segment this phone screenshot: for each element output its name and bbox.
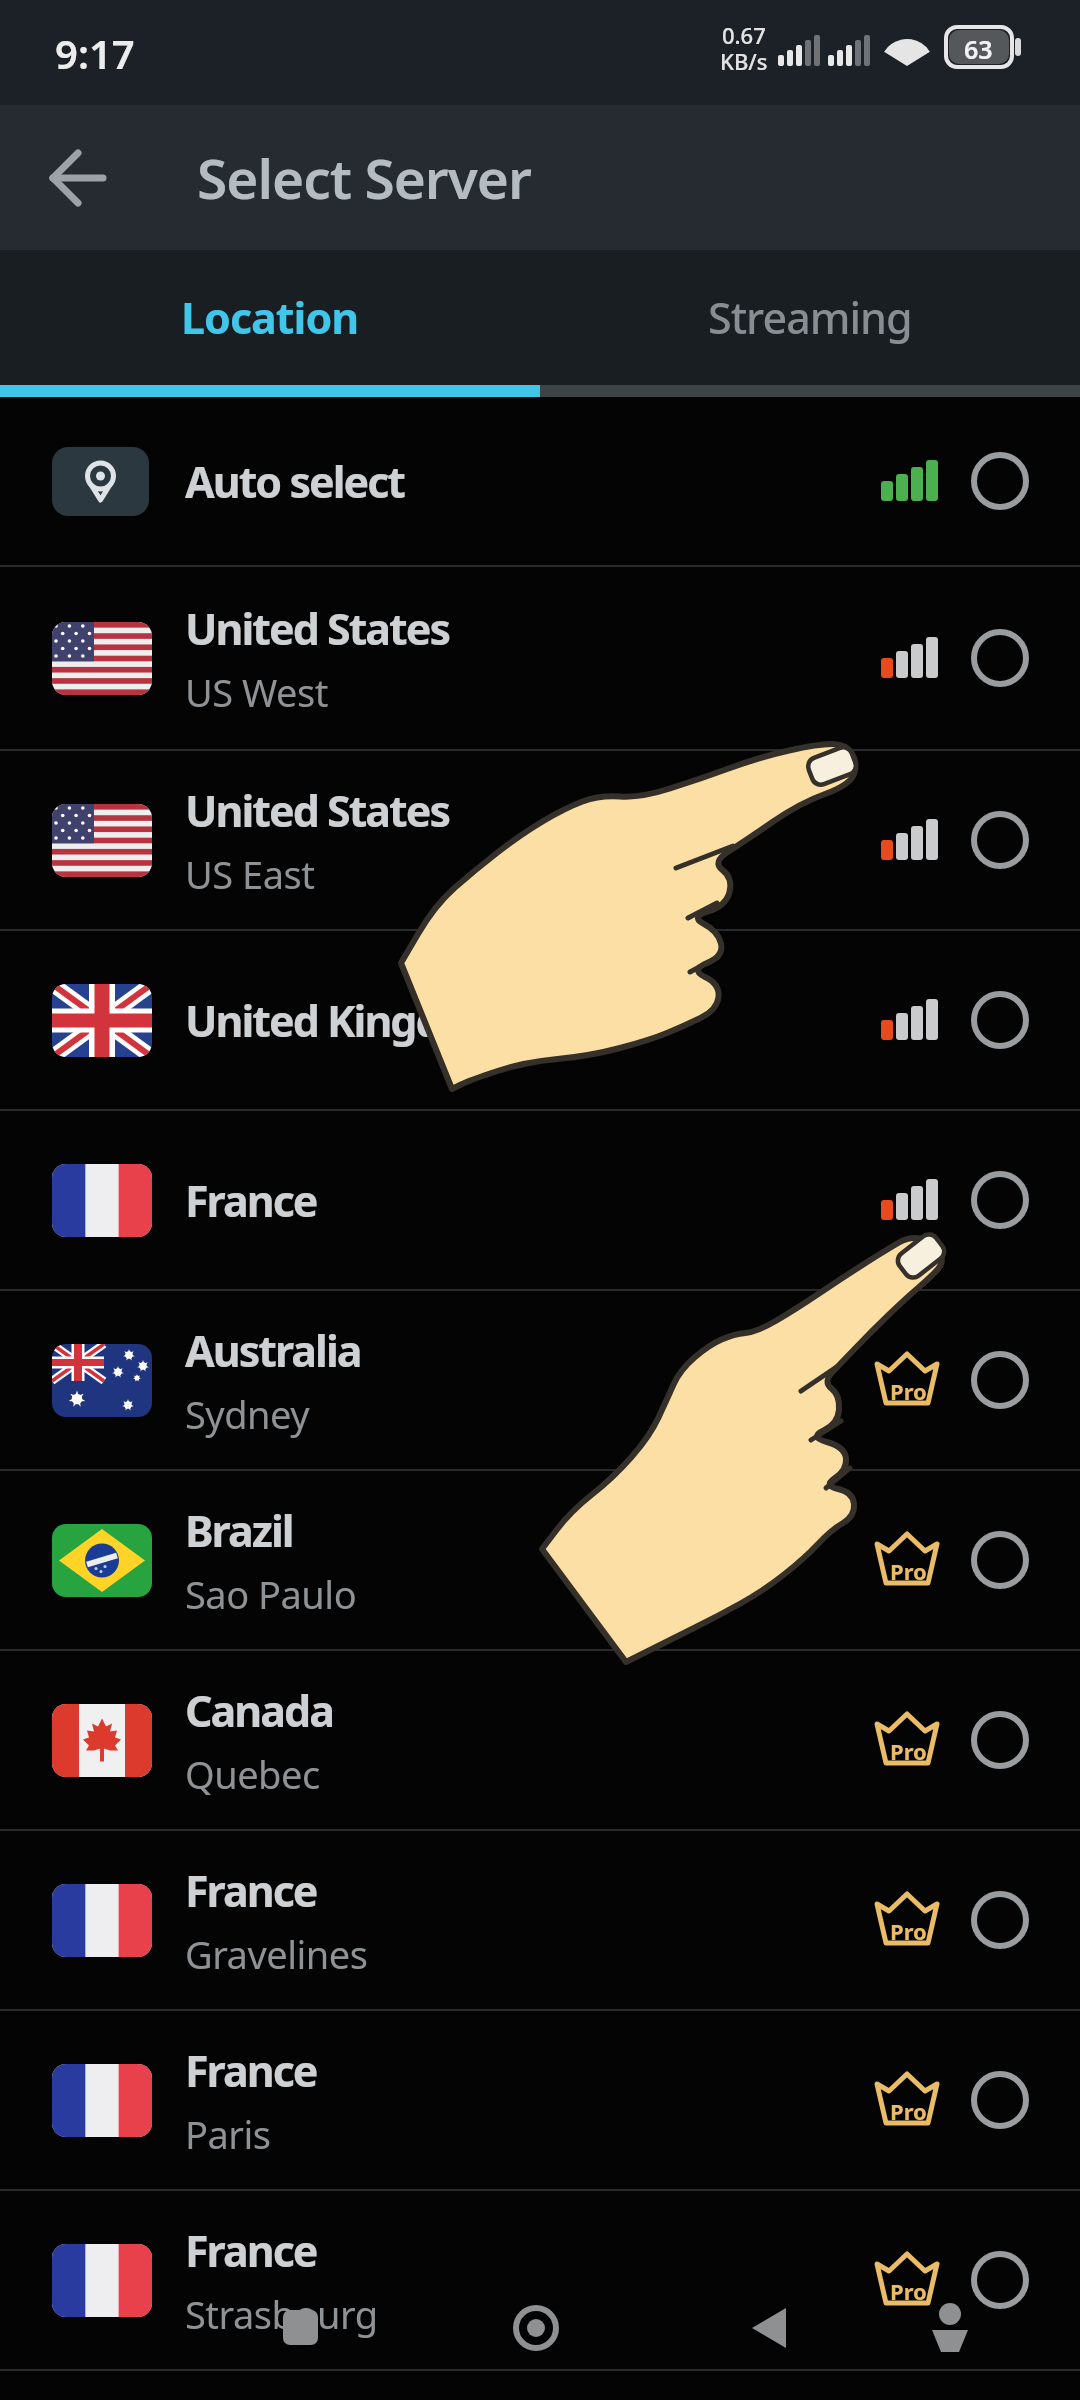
staticText: Australia bbox=[185, 1321, 361, 1380]
button[interactable]: United States bbox=[0, 567, 1080, 749]
staticText: Quebec bbox=[185, 1748, 320, 1800]
staticText: United Kingdom bbox=[185, 991, 506, 1050]
button[interactable]: France bbox=[0, 1111, 1080, 1289]
staticText: Pro bbox=[890, 2096, 927, 2126]
staticText: Paris bbox=[185, 2108, 271, 2160]
button[interactable] bbox=[275, 2300, 325, 2350]
button[interactable] bbox=[745, 2300, 795, 2350]
staticText: France bbox=[185, 1861, 317, 1920]
staticText: Pro bbox=[890, 1556, 927, 1586]
button[interactable]: Auto select bbox=[0, 397, 1080, 565]
staticText: Strasbourg bbox=[185, 2288, 378, 2340]
staticText: Gravelines bbox=[185, 1928, 368, 1980]
staticText: Streaming bbox=[708, 288, 912, 347]
button[interactable]: United Kingdom bbox=[0, 931, 1080, 1109]
button[interactable] bbox=[35, 135, 121, 221]
staticText: France bbox=[185, 2041, 317, 2100]
staticText: Location bbox=[181, 288, 359, 347]
staticText: United States bbox=[185, 599, 450, 658]
staticText: Pro bbox=[890, 1736, 927, 1766]
button[interactable]: France bbox=[0, 1831, 1080, 2009]
button[interactable]: Streaming bbox=[540, 250, 1080, 385]
staticText: US East bbox=[185, 848, 315, 900]
staticText: KB/s bbox=[720, 46, 768, 76]
staticText: Canada bbox=[185, 1681, 334, 1740]
staticText: Pro bbox=[890, 2276, 927, 2306]
staticText: Sao Paulo bbox=[185, 1568, 357, 1620]
button[interactable]: Location bbox=[0, 250, 540, 385]
staticText: Brazil bbox=[185, 1501, 293, 1560]
button[interactable]: Brazil bbox=[0, 1471, 1080, 1649]
button[interactable]: France bbox=[0, 2191, 1080, 2369]
staticText: 0.67 bbox=[722, 20, 766, 50]
staticText: France bbox=[185, 1171, 317, 1230]
button[interactable]: France bbox=[0, 2011, 1080, 2189]
staticText: United States bbox=[185, 781, 450, 840]
button[interactable] bbox=[922, 2298, 978, 2354]
button[interactable]: Canada bbox=[0, 1651, 1080, 1829]
staticText: Auto select bbox=[185, 452, 405, 511]
staticText: Select Server bbox=[197, 140, 531, 215]
button[interactable]: United States bbox=[0, 751, 1080, 929]
staticText: 63 bbox=[964, 32, 993, 66]
staticText: US West bbox=[185, 666, 328, 718]
staticText: France bbox=[185, 2221, 317, 2280]
staticText: Sydney bbox=[185, 1388, 310, 1440]
staticText: Pro bbox=[890, 1916, 927, 1946]
staticText: 9:17 bbox=[55, 26, 135, 80]
staticText: Pro bbox=[890, 1376, 927, 1406]
button[interactable] bbox=[510, 2300, 562, 2352]
button[interactable]: Australia bbox=[0, 1291, 1080, 1469]
